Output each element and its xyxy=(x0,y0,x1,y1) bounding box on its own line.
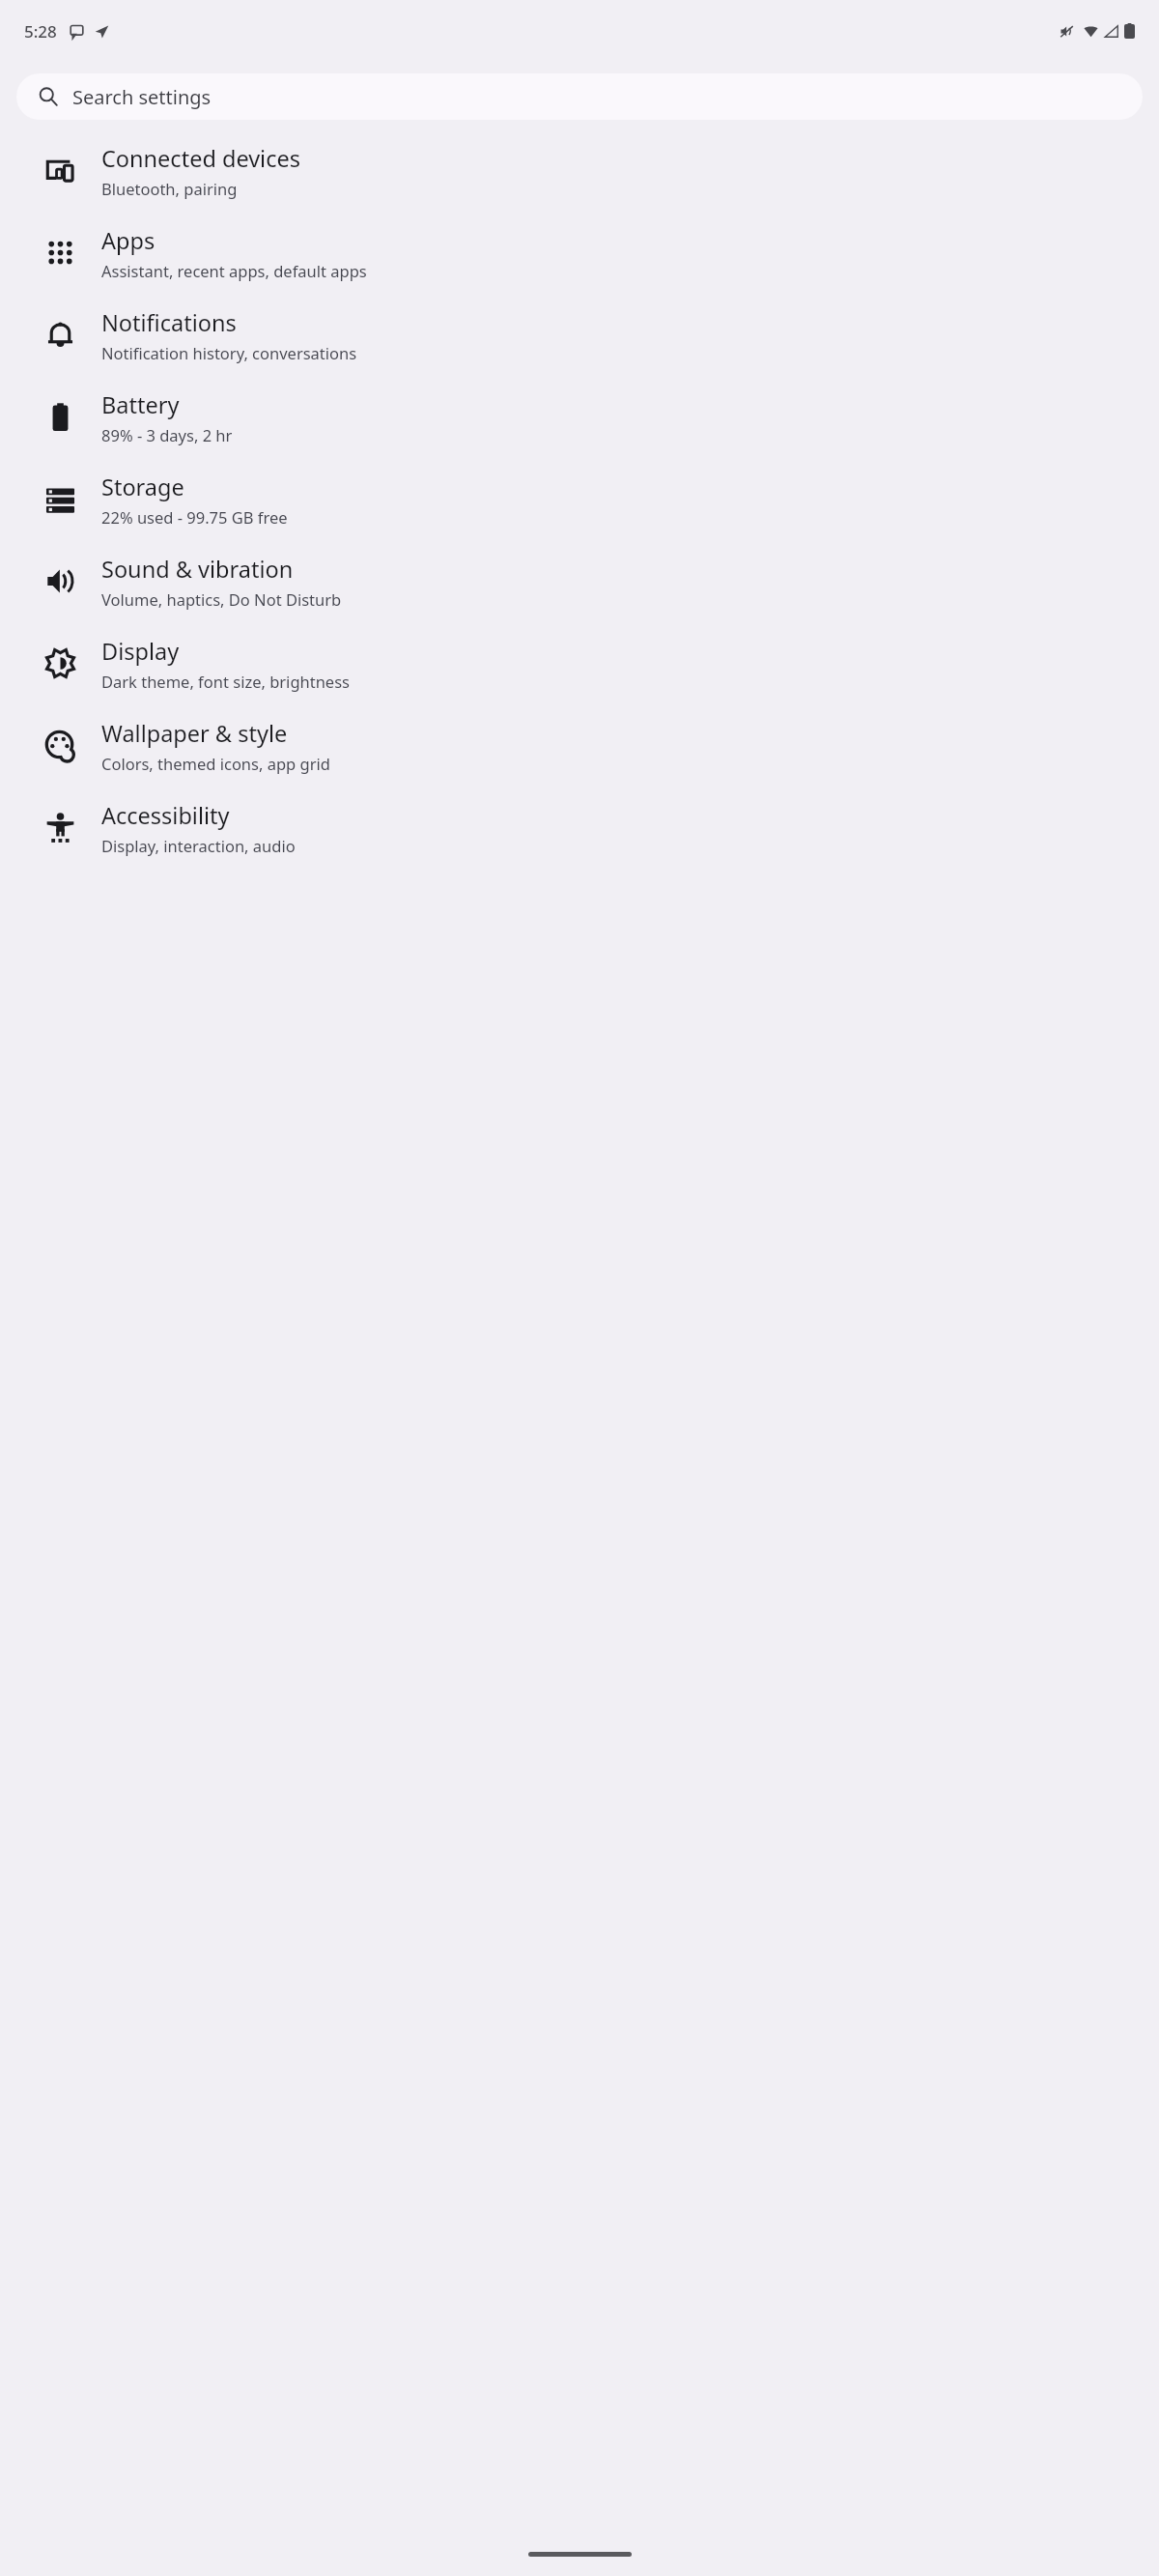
button[interactable]: Battery xyxy=(0,376,1159,458)
staticText: Notification history, conversations xyxy=(101,342,357,363)
staticText: Connected devices xyxy=(101,143,300,174)
staticText: Accessibility xyxy=(101,800,230,831)
staticText: Battery xyxy=(101,389,180,420)
staticText: Display xyxy=(101,636,180,667)
button[interactable]: Display xyxy=(0,622,1159,704)
staticText: Wallpaper & style xyxy=(101,718,288,749)
button[interactable]: Accessibility xyxy=(0,787,1159,869)
staticText: Display, interaction, audio xyxy=(101,835,296,856)
staticText: Colors, themed icons, app grid xyxy=(101,753,330,774)
button[interactable]: Storage xyxy=(0,458,1159,540)
staticText: 89% - 3 days, 2 hr xyxy=(101,424,233,445)
button[interactable]: Connected devices xyxy=(0,129,1159,212)
staticText: Search settings xyxy=(72,84,212,110)
staticText: 5:28 xyxy=(24,20,57,43)
button[interactable]: Wallpaper & style xyxy=(0,704,1159,787)
button[interactable]: Search settings xyxy=(16,73,1143,120)
staticText: Notifications xyxy=(101,307,237,338)
staticText: Storage xyxy=(101,472,184,502)
button[interactable]: Sound & vibration xyxy=(0,540,1159,622)
button[interactable]: Apps xyxy=(0,212,1159,294)
staticText: Volume, haptics, Do Not Disturb xyxy=(101,588,342,610)
button[interactable]: Notifications xyxy=(0,294,1159,376)
staticText: Dark theme, font size, brightness xyxy=(101,671,350,692)
staticText: Sound & vibration xyxy=(101,554,294,585)
staticText: Assistant, recent apps, default apps xyxy=(101,260,367,281)
staticText: Apps xyxy=(101,225,155,256)
staticText: 22% used - 99.75 GB free xyxy=(101,506,288,528)
staticText: Bluetooth, pairing xyxy=(101,178,238,199)
